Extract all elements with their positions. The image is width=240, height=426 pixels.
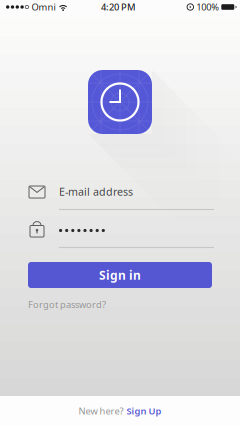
button[interactable] xyxy=(28,219,214,249)
button[interactable]: Forgot password? xyxy=(28,298,212,310)
staticText: Sign Up xyxy=(126,405,161,417)
button[interactable]: New here? xyxy=(0,396,240,426)
staticText: Omni xyxy=(32,1,56,13)
staticText: New here? xyxy=(78,405,123,417)
staticText: 4:20 PM xyxy=(101,1,136,13)
button[interactable]: Sign in xyxy=(28,262,212,288)
button[interactable]: E-mail address xyxy=(28,181,214,211)
staticText: 100% xyxy=(196,1,219,13)
staticText: Sign in xyxy=(99,267,141,283)
staticText: E-mail address xyxy=(59,184,133,199)
staticText: Forgot password? xyxy=(28,298,106,311)
